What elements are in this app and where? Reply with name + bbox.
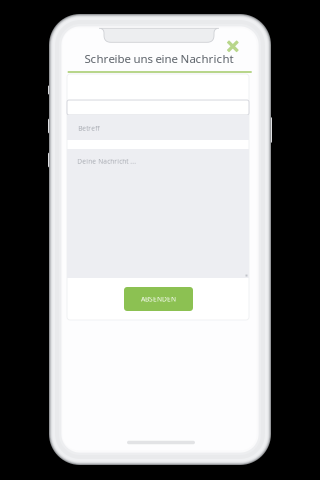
button[interactable]: ABSENDEN — [124, 287, 193, 311]
staticText: Betreff — [78, 124, 99, 133]
button[interactable]: Schließen — [226, 39, 240, 53]
staticText: ABSENDEN — [141, 294, 176, 304]
staticText: Deine Nachricht ... — [77, 157, 136, 166]
button[interactable]: Schreibe uns eine Nachricht — [84, 51, 233, 66]
staticText: Schreibe uns eine Nachricht — [84, 51, 233, 66]
